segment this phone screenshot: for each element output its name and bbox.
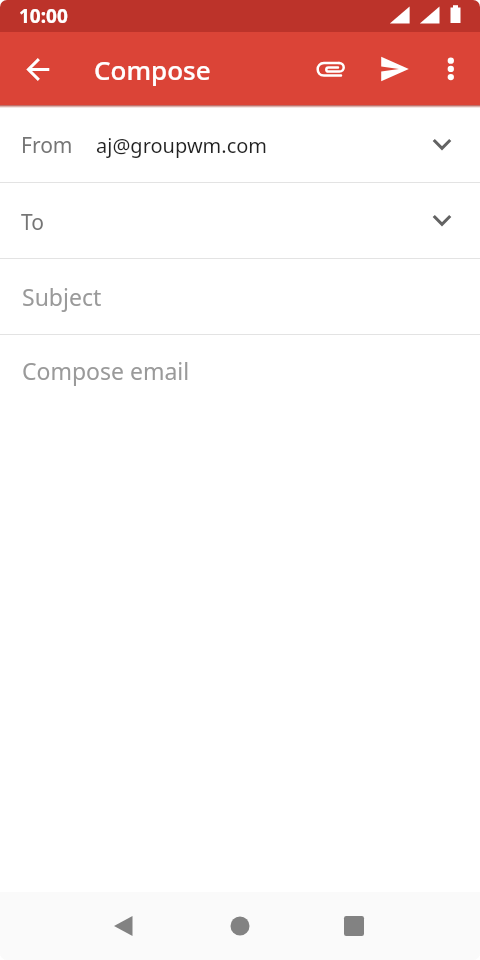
button[interactable]: Recent apps <box>325 892 382 960</box>
button[interactable]: Subject <box>0 259 480 334</box>
staticText: From <box>21 131 73 160</box>
staticText: Compose <box>94 52 211 87</box>
button[interactable]: Expand <box>414 193 470 249</box>
button[interactable]: Attach file <box>303 41 359 97</box>
button[interactable]: Back <box>95 892 152 960</box>
button[interactable]: Expand <box>414 117 470 173</box>
button[interactable]: Send <box>367 41 423 97</box>
button[interactable]: Home <box>211 892 268 960</box>
staticText: Subject <box>22 281 102 312</box>
button[interactable]: From <box>0 108 480 182</box>
button[interactable]: More options <box>423 41 479 97</box>
button[interactable]: To <box>0 183 480 258</box>
staticText: aj@groupwm.com <box>96 132 268 159</box>
staticText: Compose email <box>22 355 190 386</box>
button[interactable]: Back <box>10 41 66 97</box>
staticText: 10:00 <box>19 3 68 29</box>
button[interactable]: Compose email <box>0 335 480 892</box>
staticText: To <box>21 208 44 237</box>
